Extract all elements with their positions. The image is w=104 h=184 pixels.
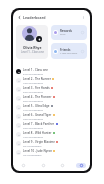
staticText: 3 <box>18 88 20 91</box>
button[interactable]: 4 <box>16 94 87 103</box>
staticText: 4 <box>18 97 20 100</box>
button[interactable]: Friends <box>51 43 87 59</box>
button[interactable]: Search <box>33 159 52 171</box>
staticText: Level 10 - Jude Nyron <box>23 149 52 153</box>
staticText: Level 7 - Black Panther <box>23 122 55 126</box>
staticText: 81% of members <box>23 72 43 75</box>
staticText: Level 1 - Class one <box>23 68 49 72</box>
staticText: Level 2 - The Runner <box>23 77 51 81</box>
staticText: 5 <box>18 106 20 109</box>
button[interactable]: 5 <box>16 103 87 112</box>
button[interactable]: 1 <box>16 67 87 76</box>
button[interactable]: Rewards <box>51 25 87 40</box>
staticText: 2070 <box>60 33 66 36</box>
staticText: Level 3 - Fire Hands <box>23 86 50 90</box>
button[interactable]: 8 <box>16 130 87 139</box>
staticText: Level 1 - Class one <box>21 50 44 54</box>
staticText: 33% of members <box>23 117 43 120</box>
staticText: 9 <box>18 142 20 145</box>
button[interactable]: Back <box>17 15 22 20</box>
staticText: Olivia Rhye <box>23 45 42 49</box>
staticText: 7 <box>18 124 20 127</box>
staticText: 73% of members <box>23 81 43 84</box>
staticText: 4% of members <box>23 153 42 156</box>
button[interactable]: 6 <box>16 112 87 121</box>
staticText: 10 <box>17 151 20 154</box>
button[interactable]: 7 <box>16 121 87 130</box>
button[interactable]: 9 <box>16 139 87 148</box>
staticText: 6 <box>18 115 20 118</box>
button[interactable]: Stats <box>52 159 71 171</box>
button[interactable]: Home <box>13 159 33 171</box>
staticText: Level 5 - Ultra Edge <box>23 104 50 108</box>
staticText: 22% of members <box>23 126 43 129</box>
button[interactable]: 2 <box>16 76 87 85</box>
staticText: 64% of members <box>23 90 43 93</box>
staticText: Level 4 - The Pioneer <box>23 95 52 99</box>
button[interactable]: 3 <box>16 85 87 94</box>
staticText: 7 new this week <box>60 52 78 55</box>
staticText: Level 6 - Grand Tiger <box>23 113 52 117</box>
staticText: 9% of members <box>23 144 42 147</box>
button[interactable]: More options <box>81 15 86 20</box>
staticText: 15% of members <box>23 135 43 138</box>
staticText: Friends <box>60 48 71 52</box>
staticText: 8 <box>18 133 20 136</box>
button[interactable]: Olivia Rhye <box>16 25 48 59</box>
staticText: Level 8 - Wild Hunter <box>23 131 52 135</box>
staticText: 41% of members <box>23 108 43 111</box>
staticText: Leaderboard <box>23 15 46 20</box>
staticText: 2 <box>18 79 20 82</box>
button[interactable]: Profile <box>71 159 90 171</box>
staticText: 1 <box>18 70 20 73</box>
staticText: Level 9 - Virgin Maxime <box>23 140 55 144</box>
staticText: Rewards <box>60 29 73 33</box>
button[interactable]: 10 <box>16 148 87 157</box>
staticText: 55% of members <box>23 99 43 102</box>
